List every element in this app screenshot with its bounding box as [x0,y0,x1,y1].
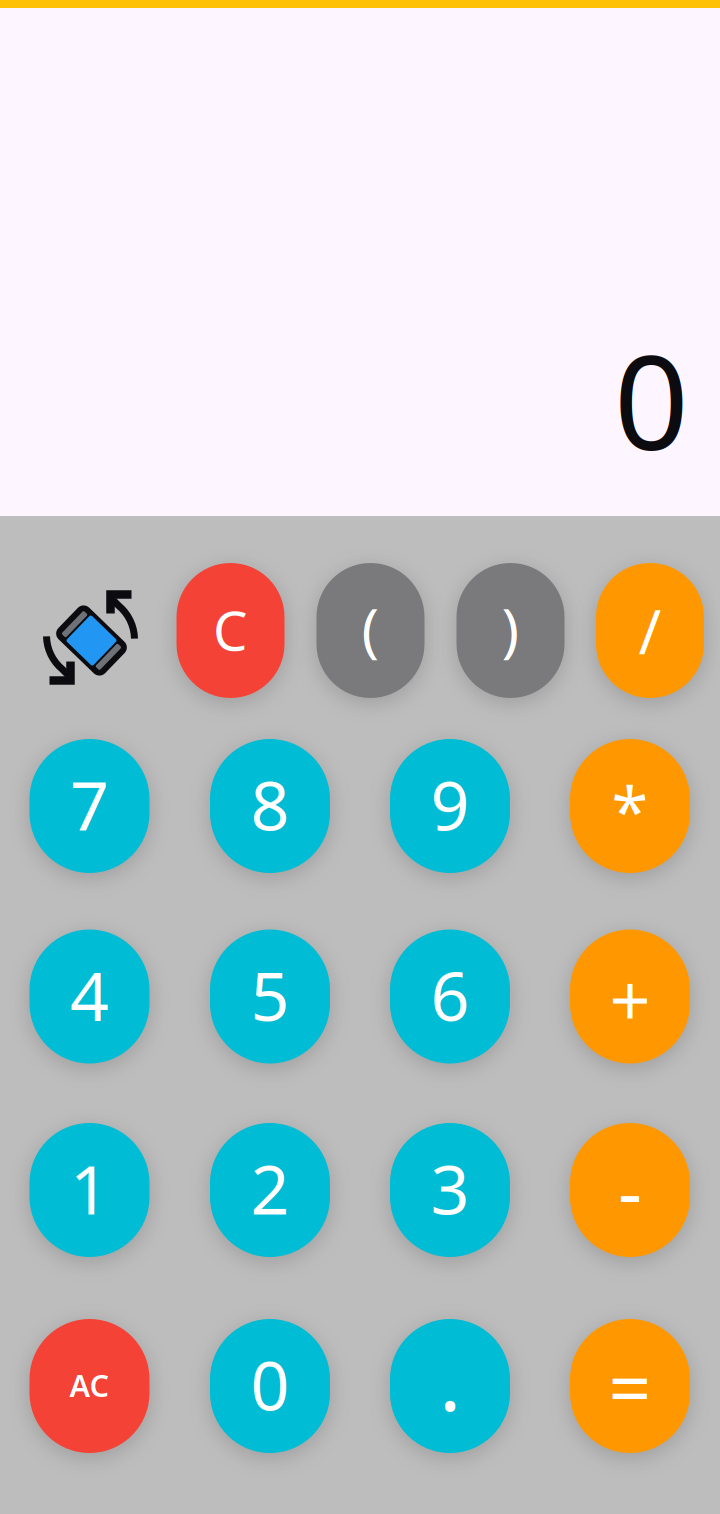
staticText: AC [69,1365,109,1405]
button[interactable]: 6 [390,929,510,1063]
staticText: 5 [250,949,289,1040]
button[interactable]: - [570,1123,690,1257]
staticText: 1 [70,1143,109,1233]
staticText: + [609,951,650,1046]
button[interactable]: 8 [210,739,330,873]
button[interactable]: 9 [390,739,510,873]
staticText: * [611,767,648,855]
button[interactable]: ) [456,563,564,698]
button[interactable]: + [570,929,690,1063]
button[interactable]: C [176,563,284,698]
staticText: 0 [250,1339,289,1429]
button[interactable]: 1 [29,1123,149,1257]
button[interactable]: ( [316,563,424,698]
staticText: 4 [70,949,109,1040]
staticText: / [638,590,661,671]
staticText: 6 [430,949,469,1040]
staticText: ) [501,589,519,667]
button[interactable]: 0 [210,1319,330,1453]
staticText: 0 [614,312,689,486]
staticText: ( [361,589,379,667]
button[interactable]: . [390,1319,510,1453]
staticText: C [213,593,248,666]
button[interactable]: = [570,1319,690,1453]
button[interactable]: AC [29,1319,149,1453]
staticText: = [608,1336,651,1436]
staticText: - [618,1140,642,1240]
staticText: 3 [430,1143,469,1233]
button[interactable]: 7 [29,739,149,873]
button[interactable]: * [570,739,690,873]
staticText: 9 [430,759,469,849]
staticText: . [439,1324,461,1434]
button[interactable]: / [596,563,704,698]
staticText: 7 [70,759,109,849]
button[interactable]: 5 [210,929,330,1063]
staticText: 8 [250,759,289,849]
button[interactable]: 3 [390,1123,510,1257]
button[interactable]: 2 [210,1123,330,1257]
button[interactable]: 4 [29,929,149,1063]
button[interactable]: Rotate screen [40,587,140,687]
staticText: 2 [250,1143,289,1233]
